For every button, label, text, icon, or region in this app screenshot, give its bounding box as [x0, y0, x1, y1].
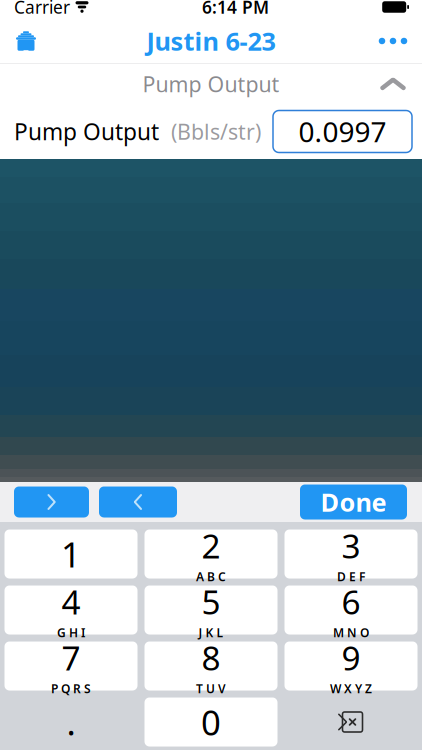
staticText: 3	[341, 523, 360, 568]
button[interactable]: Home	[0, 18, 52, 64]
button[interactable]: Previous field	[14, 486, 89, 517]
staticText: (Bbls/str)	[171, 117, 261, 146]
staticText: G H I	[57, 625, 85, 641]
button[interactable]: 5	[144, 585, 277, 634]
staticText: Done	[320, 485, 386, 519]
button[interactable]: 2	[144, 529, 277, 578]
staticText: 9	[341, 635, 360, 680]
staticText: 0	[201, 699, 221, 745]
staticText: J K L	[198, 625, 223, 641]
staticText: Carrier	[14, 0, 70, 18]
staticText: 1	[61, 531, 81, 577]
button[interactable]: 0	[144, 697, 277, 746]
staticText: 2	[201, 523, 220, 568]
button[interactable]: 3	[284, 529, 417, 578]
staticText: W X Y Z	[330, 681, 372, 697]
staticText: 7	[61, 635, 80, 680]
button[interactable]: Pump Output	[0, 64, 422, 104]
staticText: 6	[341, 579, 360, 624]
staticText: Pump Output	[142, 70, 279, 98]
button[interactable]: .	[4, 697, 137, 746]
button[interactable]: Next field	[99, 486, 177, 517]
button[interactable]: Delete	[284, 697, 417, 746]
button[interactable]: 1	[4, 529, 137, 578]
staticText: Pump Output	[14, 116, 159, 146]
staticText: A B C	[196, 569, 226, 585]
button[interactable]: 6	[284, 585, 417, 634]
staticText: .	[66, 699, 75, 745]
button[interactable]: 8	[144, 641, 277, 690]
staticText: 4	[61, 579, 80, 624]
button[interactable]: 9	[284, 641, 417, 690]
staticText: 8	[201, 635, 220, 680]
staticText: D E F	[337, 569, 365, 585]
staticText: Justin 6-23	[146, 24, 275, 58]
staticText: P Q R S	[51, 681, 91, 697]
button[interactable]: More options	[364, 18, 422, 64]
staticText: 0.0997	[298, 113, 386, 150]
button[interactable]: 7	[4, 641, 137, 690]
button[interactable]: 0.0997	[273, 110, 412, 152]
staticText: 6:14 PM	[202, 0, 269, 18]
staticText: T U V	[196, 681, 226, 697]
staticText: 5	[201, 579, 220, 624]
staticText: M N O	[333, 625, 369, 641]
button[interactable]: 4	[4, 585, 137, 634]
button[interactable]: Done	[300, 484, 407, 519]
